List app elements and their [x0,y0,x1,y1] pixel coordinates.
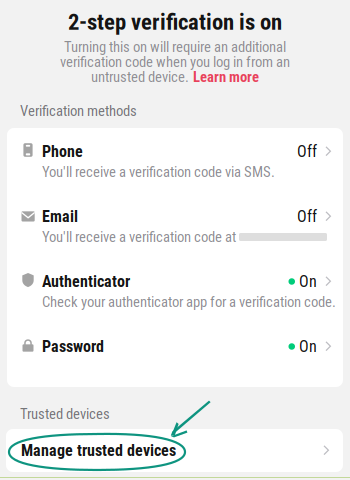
button[interactable]: Authenticator [7,258,343,323]
button[interactable]: Password [7,323,343,387]
staticText: untrusted device. [91,68,189,86]
button[interactable]: Phone [7,128,343,193]
staticText: On [299,272,317,291]
button[interactable]: Email [7,193,343,258]
staticText: Email [42,207,78,226]
staticText: You'll receive a verification code at [42,228,236,246]
staticText: verification code when you log in from a… [60,53,290,71]
staticText: Check your authenticator app for a verif… [42,293,336,311]
staticText: Phone [42,142,83,161]
staticText: Off [297,207,317,226]
staticText: Learn more [193,68,259,86]
staticText: 2-step verification is on [68,9,282,35]
staticText: Password [42,337,104,356]
staticText: Turning this on will require an addition… [64,38,286,56]
staticText: You'll receive a verification code via S… [42,163,275,181]
staticText: Verification methods [20,102,137,120]
staticText: Manage trusted devices [21,441,176,460]
staticText: Trusted devices [20,405,110,423]
staticText: Off [297,142,317,161]
staticText: Authenticator [42,272,130,291]
staticText: On [299,337,317,356]
button[interactable]: Manage trusted devices [6,429,343,472]
button[interactable]: Learn more [193,68,259,86]
